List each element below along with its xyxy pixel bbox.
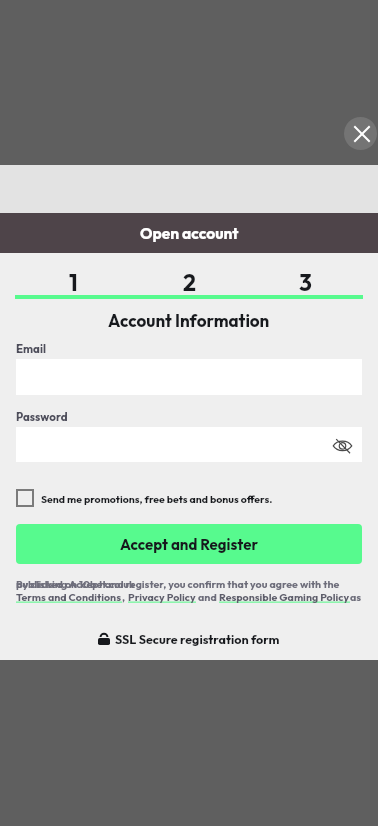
button[interactable]: 1	[15, 268, 131, 294]
staticText: Password	[16, 409, 68, 423]
staticText: 1	[69, 268, 78, 294]
staticText: Account Information	[108, 310, 270, 331]
staticText: Accept and Register	[120, 535, 259, 554]
staticText: and	[196, 590, 219, 603]
staticText: published on 10bet.co.uk	[16, 577, 135, 590]
button[interactable]: Open account	[0, 213, 378, 253]
staticText: ,	[122, 590, 128, 603]
button[interactable]: Terms and Conditions	[16, 590, 122, 603]
button[interactable]: Accept and Register	[16, 524, 362, 564]
button[interactable]: Privacy Policy	[128, 590, 196, 603]
staticText: as	[350, 577, 362, 603]
button[interactable]: Show password	[330, 433, 354, 457]
button[interactable]: 2	[131, 268, 247, 294]
button[interactable]: Send me promotions, free bets and bonus …	[16, 489, 273, 507]
staticText: Email	[16, 341, 46, 355]
button[interactable]: Show password	[16, 427, 362, 462]
button[interactable]: Responsible Gaming Policy	[219, 590, 350, 603]
button[interactable]: 3	[247, 268, 363, 294]
staticText: By clicking Accept and register, you con…	[16, 577, 340, 590]
staticText: Open account	[140, 223, 239, 243]
staticText: 2	[183, 268, 196, 294]
staticText: 3	[299, 268, 312, 294]
button[interactable]: Close	[344, 117, 377, 150]
staticText: Send me promotions, free bets and bonus …	[41, 492, 273, 505]
staticText: SSL Secure registration form	[115, 631, 280, 647]
